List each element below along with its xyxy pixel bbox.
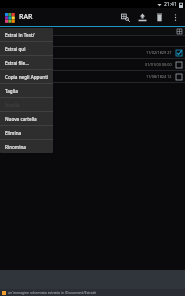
button[interactable]: Estrai file... (0, 56, 53, 69)
staticText: Copia negli Appunti (5, 74, 49, 80)
staticText: un'immagine schermata estratta in /Docum… (8, 290, 97, 295)
staticText: 01/01/00 00:00 (145, 62, 172, 67)
staticText: cartella superiore (13, 38, 51, 44)
staticText: 21:41 (164, 1, 177, 8)
button[interactable]: Grid view (176, 28, 182, 34)
button[interactable]: Immagine.jpg (0, 71, 185, 82)
staticText: Incolla (5, 102, 20, 108)
button[interactable]: Not selected (175, 61, 182, 68)
button[interactable]: Copia negli Appunti (0, 70, 53, 83)
staticText: Estrai file... (5, 60, 29, 66)
button[interactable]: Taglia (0, 84, 53, 97)
button[interactable]: cartella superiore (0, 36, 185, 46)
button[interactable]: Delete (153, 9, 165, 25)
staticText: Estrai in Test/ (5, 32, 35, 38)
button[interactable]: Extract (136, 9, 148, 25)
button[interactable]: Search (119, 9, 131, 25)
staticText: Immagine.jpg (13, 74, 43, 80)
staticText: Taglia (5, 88, 18, 94)
button[interactable]: Test.rar (0, 47, 185, 58)
button[interactable]: un'immagine schermata estratta in /Docum… (0, 289, 185, 296)
staticText: Estrai qui (5, 46, 26, 52)
staticText: Rinomina (5, 144, 26, 150)
staticText: Documento.pdf (13, 62, 47, 68)
staticText: Elimina (5, 130, 22, 136)
button[interactable]: Not selected (175, 73, 182, 80)
button[interactable]: Estrai qui (0, 42, 53, 55)
button[interactable]: Nuova cartella (0, 112, 53, 125)
button[interactable]: Rinomina (0, 140, 53, 153)
button[interactable]: Estrai in Test/ (0, 28, 53, 41)
button[interactable]: RAR app icon (4, 12, 15, 23)
staticText: Test.rar (13, 47, 29, 53)
staticText: contenuti (13, 53, 29, 58)
staticText: 11/08/1824 12 (146, 74, 172, 79)
button[interactable]: Selected (175, 49, 182, 56)
button[interactable]: Documento.pdf (0, 59, 185, 70)
staticText: 11/02/1829 27 (146, 50, 172, 55)
button[interactable]: More options (169, 9, 181, 25)
staticText: RAR (19, 12, 33, 22)
button[interactable]: Elimina (0, 126, 53, 139)
staticText: Nuova cartella (5, 116, 37, 122)
